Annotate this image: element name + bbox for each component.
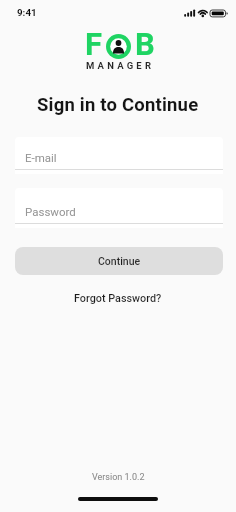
staticText: Forgot Password? xyxy=(74,292,162,305)
button[interactable]: Continue xyxy=(15,247,223,275)
staticText: Continue xyxy=(98,255,141,267)
button[interactable]: E-mail xyxy=(15,137,223,174)
button[interactable]: Forgot Password? xyxy=(70,288,166,309)
staticText: Password xyxy=(25,205,76,218)
staticText: 9:41 xyxy=(17,7,37,18)
staticText: Version 1.0.2 xyxy=(92,472,145,483)
staticText: E-mail xyxy=(25,151,57,164)
staticText: Sign in to Continue xyxy=(37,94,199,116)
button[interactable]: Password xyxy=(15,188,223,228)
staticText: MANAGER xyxy=(86,60,155,71)
staticText: F xyxy=(85,26,102,62)
staticText: B xyxy=(135,26,155,62)
